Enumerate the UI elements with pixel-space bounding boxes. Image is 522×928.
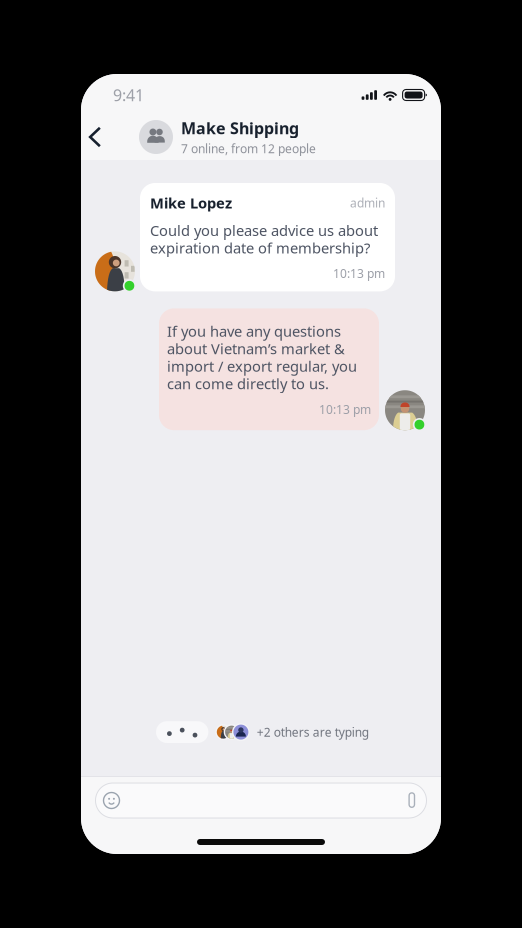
button[interactable]: Back [82,116,108,158]
staticText: +2 others are typing [257,724,369,740]
staticText: Mike Lopez [150,193,232,212]
staticText: 10:13 pm [333,265,385,281]
staticText: admin [350,195,385,211]
staticText: 10:13 pm [319,401,371,417]
staticText: If you have any questions about Vietnam’… [167,321,357,393]
staticText: Could you please advice us about expirat… [150,220,378,257]
staticText: 9:41 [113,84,144,106]
button[interactable]: Make Shipping [139,116,425,158]
staticText: Make Shipping [181,117,299,139]
staticText: 7 online, from 12 people [181,141,316,157]
button[interactable] [95,783,426,818]
